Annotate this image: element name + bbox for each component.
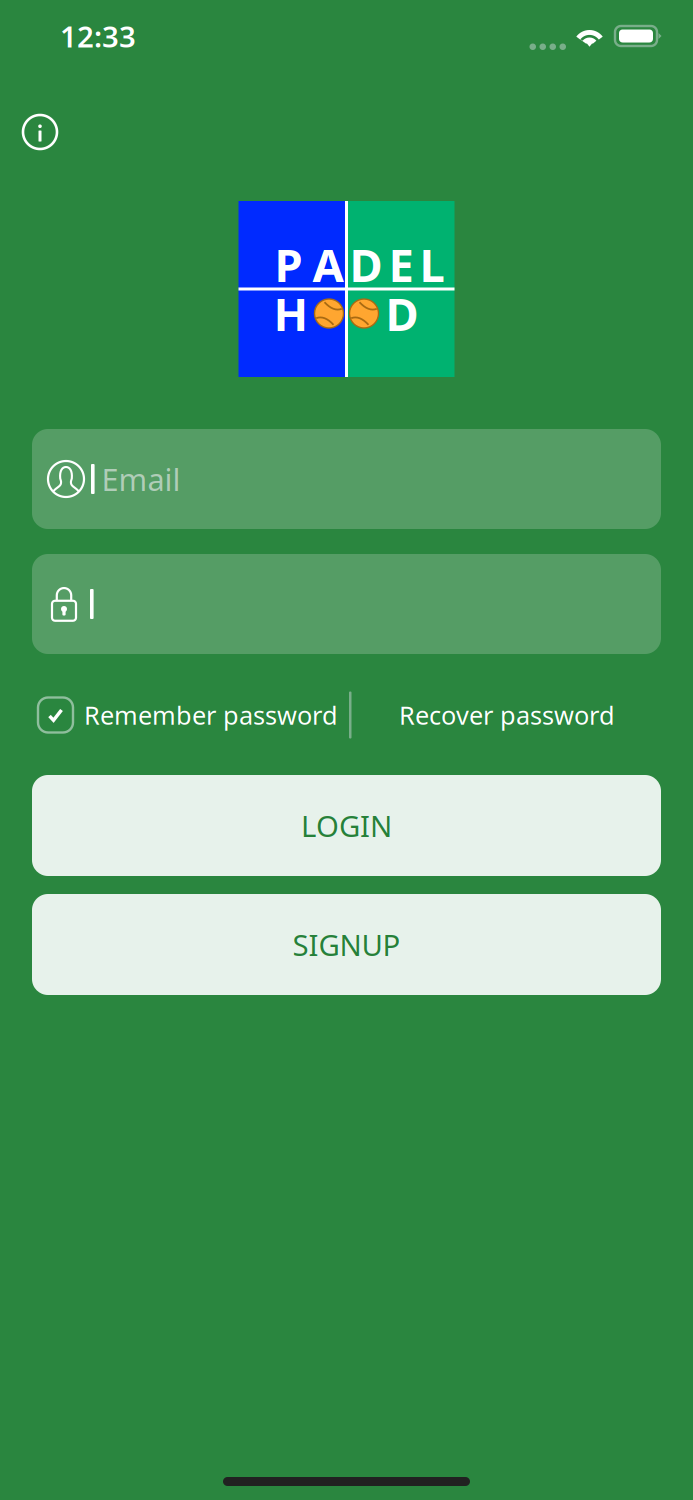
staticText: Email: [102, 459, 181, 499]
button[interactable]: [32, 554, 661, 654]
button[interactable]: Information: [18, 110, 62, 154]
staticText: D: [385, 283, 418, 344]
button[interactable]: SIGNUP: [32, 894, 661, 995]
staticText: 12:33: [60, 16, 136, 55]
staticText: PA: [274, 234, 343, 295]
staticText: Remember password: [84, 698, 338, 732]
staticText: Recover password: [399, 698, 615, 732]
button[interactable]: LOGIN: [32, 775, 661, 876]
staticText: LOGIN: [301, 806, 392, 845]
button[interactable]: Recover password: [351, 687, 662, 743]
button[interactable]: Remember password: [0, 687, 349, 743]
staticText: DEL: [349, 234, 444, 295]
staticText: SIGNUP: [292, 925, 400, 964]
staticText: H: [273, 283, 308, 344]
button[interactable]: Email: [32, 429, 661, 529]
